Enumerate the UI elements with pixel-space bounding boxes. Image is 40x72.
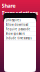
staticText: Send a link to anyone: [5, 17, 35, 20]
staticText: Include timestamps: [6, 36, 32, 40]
button[interactable]: Require passcode: [4, 27, 36, 31]
button[interactable]: Allow download: [4, 22, 36, 27]
staticText: Allow download: [6, 23, 29, 26]
staticText: Show speakers: [6, 32, 25, 35]
button[interactable]: Link expires: [4, 18, 36, 22]
staticText: Require passcode: [6, 27, 31, 31]
button[interactable]: Show speakers: [4, 31, 36, 36]
staticText: Share Transcriptions: [1, 2, 38, 16]
staticText: Link expires: [6, 18, 21, 22]
button[interactable]: Include timestamps: [4, 36, 36, 40]
